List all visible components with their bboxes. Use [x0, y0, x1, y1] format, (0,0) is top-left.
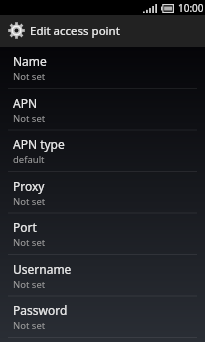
staticText: 10:00: [178, 1, 204, 15]
staticText: default: [13, 153, 45, 166]
staticText: APN type: [13, 136, 65, 152]
staticText: Edit access point: [30, 23, 120, 39]
button[interactable]: Name: [0, 47, 205, 89]
button[interactable]: APN: [0, 89, 205, 131]
staticText: Password: [13, 302, 68, 318]
staticText: Not set: [13, 236, 46, 249]
button[interactable]: Port: [0, 213, 205, 255]
other: Battery: [161, 4, 174, 13]
other: Settings: [8, 22, 25, 39]
button[interactable]: Username: [0, 255, 205, 297]
staticText: Port: [13, 219, 37, 235]
button[interactable]: Password: [0, 296, 205, 338]
staticText: Not set: [13, 278, 46, 291]
staticText: Username: [13, 261, 72, 277]
staticText: Not set: [13, 70, 46, 83]
button[interactable]: Settings: [0, 15, 205, 47]
staticText: Not set: [13, 195, 46, 208]
button[interactable]: Proxy: [0, 172, 205, 214]
staticText: Not set: [13, 319, 46, 332]
staticText: APN: [13, 95, 38, 111]
other: Signal strength: [143, 4, 157, 13]
staticText: Not set: [13, 112, 46, 125]
button[interactable]: APN type: [0, 130, 205, 172]
staticText: Name: [13, 53, 47, 69]
staticText: Proxy: [13, 178, 45, 194]
